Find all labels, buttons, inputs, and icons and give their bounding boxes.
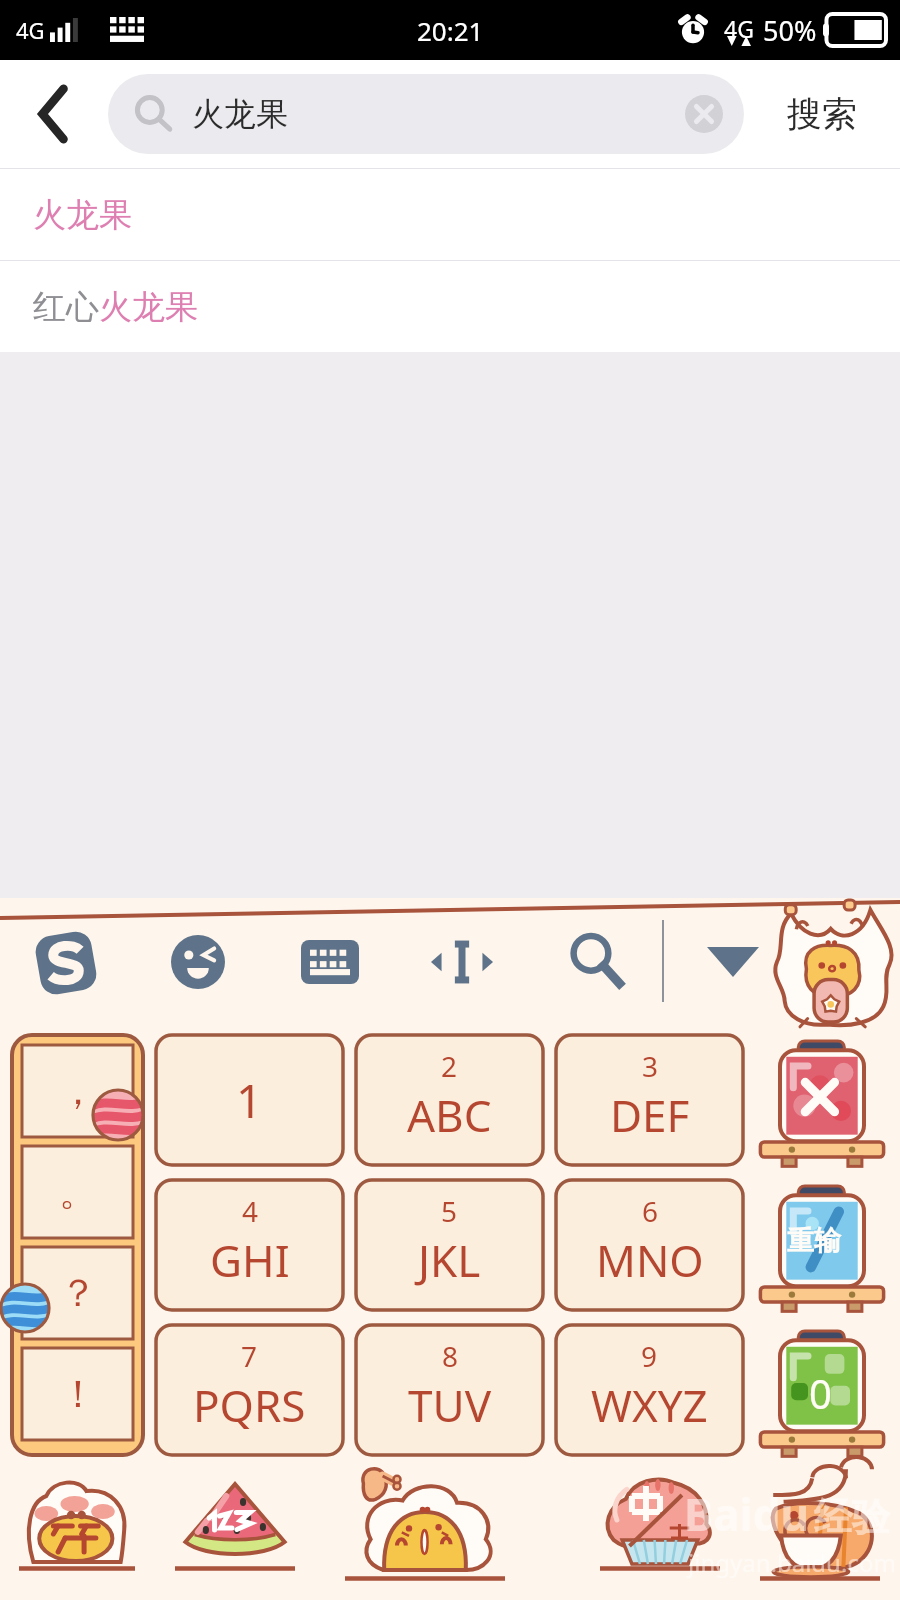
staticText: 8 bbox=[442, 1337, 459, 1375]
button[interactable]: Punctuation 。 bbox=[22, 1146, 133, 1238]
button[interactable]: Search bbox=[560, 924, 632, 996]
staticText: 3 bbox=[642, 1047, 659, 1085]
button[interactable]: 9 bbox=[556, 1325, 743, 1455]
button[interactable]: 红心火龙果 bbox=[0, 261, 900, 352]
button[interactable]: Symbols bbox=[0, 1456, 157, 1600]
button[interactable]: Clear input bbox=[752, 1180, 892, 1312]
staticText: 4G bbox=[724, 13, 754, 44]
staticText: jingyan.baidu.com bbox=[688, 1546, 896, 1579]
staticText: 5 bbox=[441, 1192, 458, 1230]
button[interactable]: Clear text bbox=[679, 89, 729, 139]
staticText: 火龙果 bbox=[33, 194, 132, 236]
button[interactable]: Switch keyboard bbox=[294, 926, 366, 998]
button[interactable]: Punctuation ！ bbox=[22, 1348, 133, 1440]
staticText: ？ bbox=[59, 1269, 97, 1317]
staticText: Baidu bbox=[684, 1484, 810, 1544]
button[interactable]: 4 bbox=[156, 1180, 343, 1310]
button[interactable]: Chinese input bbox=[370, 1456, 530, 1600]
staticText: 火龙果 bbox=[192, 94, 288, 134]
staticText: ， bbox=[59, 1067, 97, 1115]
staticText: 。 bbox=[59, 1168, 97, 1216]
button[interactable]: Hide keyboard bbox=[697, 926, 769, 998]
button[interactable]: Punctuation ？ bbox=[22, 1247, 133, 1339]
staticText: ！ bbox=[59, 1370, 97, 1418]
button[interactable]: Move cursor bbox=[426, 926, 498, 998]
button[interactable]: 6 bbox=[556, 1180, 743, 1310]
button[interactable]: Settings bbox=[580, 1456, 740, 1600]
button[interactable]: 搜索 bbox=[744, 60, 900, 168]
button[interactable]: 2 bbox=[356, 1035, 543, 1165]
button[interactable]: 火龙果 bbox=[108, 74, 744, 154]
staticText: JKL bbox=[418, 1230, 481, 1290]
button[interactable]: Numbers bbox=[155, 1456, 315, 1600]
staticText: MNO bbox=[596, 1230, 704, 1290]
staticText: 重输 bbox=[787, 1224, 841, 1258]
staticText: GHI bbox=[210, 1230, 290, 1290]
button[interactable]: Emoji bbox=[162, 926, 234, 998]
staticText: 2 bbox=[441, 1047, 458, 1085]
button[interactable]: 火龙果 bbox=[0, 169, 900, 260]
button[interactable]: 8 bbox=[356, 1325, 543, 1455]
button[interactable]: 1 bbox=[156, 1035, 343, 1165]
button[interactable]: 7 bbox=[156, 1325, 343, 1455]
staticText: 6 bbox=[642, 1192, 659, 1230]
staticText: 20:21 bbox=[417, 13, 484, 48]
staticText: TUV bbox=[408, 1375, 492, 1435]
staticText: 50% bbox=[763, 12, 817, 49]
button[interactable]: Zero bbox=[752, 1325, 892, 1457]
staticText: 红心火龙果 bbox=[33, 286, 198, 328]
button[interactable]: Punctuation ， bbox=[22, 1045, 133, 1137]
button[interactable]: More bbox=[740, 1456, 900, 1600]
staticText: 4 bbox=[242, 1192, 259, 1230]
staticText: 7 bbox=[241, 1337, 258, 1375]
staticText: 经验 bbox=[814, 1493, 890, 1541]
staticText: 0 bbox=[809, 1366, 832, 1420]
button[interactable]: 3 bbox=[556, 1035, 743, 1165]
button[interactable]: Delete bbox=[752, 1035, 892, 1167]
button[interactable]: Sogou input bbox=[26, 923, 106, 1003]
button[interactable]: 5 bbox=[356, 1180, 543, 1310]
staticText: 1 bbox=[236, 1069, 263, 1132]
staticText: PQRS bbox=[193, 1375, 306, 1435]
button[interactable]: Back bbox=[0, 60, 106, 168]
staticText: WXYZ bbox=[591, 1375, 708, 1435]
staticText: 9 bbox=[641, 1337, 658, 1375]
staticText: DEF bbox=[610, 1085, 690, 1145]
staticText: 搜索 bbox=[787, 92, 857, 136]
staticText: ABC bbox=[407, 1085, 492, 1145]
staticText: 4G bbox=[16, 15, 45, 45]
